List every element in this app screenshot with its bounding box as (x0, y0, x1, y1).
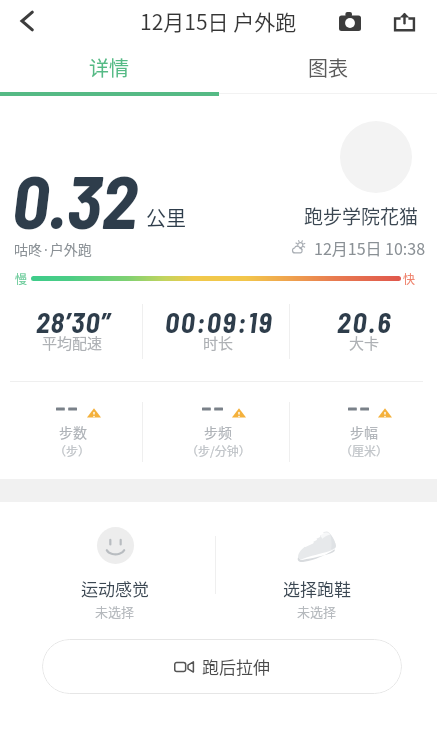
button[interactable]: 图表 (218, 42, 437, 92)
staticText: 咕咚·户外跑 (14, 239, 92, 259)
button[interactable]: 跑后拉伸 (42, 639, 402, 694)
staticText: （厘米） (340, 442, 389, 459)
staticText: 选择跑鞋 (283, 576, 351, 601)
staticText: 00:09:19 (165, 305, 274, 339)
staticText: 12月15日 10:38 (314, 236, 426, 259)
button[interactable]: 步数 (0, 402, 145, 462)
button[interactable]: 步幅 (291, 402, 437, 462)
staticText: 步数 (59, 422, 87, 442)
staticText: 快 (403, 270, 416, 287)
staticText: 20.6 (337, 305, 393, 339)
button[interactable]: 28’30” (0, 304, 145, 359)
staticText: 时长 (203, 332, 234, 354)
staticText: 0.32 (12, 155, 138, 244)
button[interactable]: Camera (330, 1, 370, 41)
button[interactable]: Back (5, 0, 49, 41)
staticText: 跑步学院花猫 (304, 202, 419, 230)
button[interactable]: User avatar (340, 121, 412, 193)
staticText: 运动感觉 (81, 576, 149, 601)
button[interactable]: Share (384, 1, 424, 41)
staticText: 平均配速 (42, 332, 103, 354)
staticText: 步频 (204, 422, 232, 442)
button[interactable]: 步频 (145, 402, 291, 462)
staticText: 跑后拉伸 (202, 654, 270, 679)
button[interactable]: 00:09:19 (145, 304, 291, 359)
button[interactable]: 运动感觉 (14, 515, 216, 625)
staticText: 慢 (15, 270, 28, 287)
button[interactable]: 详情 (0, 42, 218, 92)
button[interactable]: 选择跑鞋 (216, 515, 418, 625)
staticText: 大卡 (349, 332, 380, 354)
staticText: 12月15日 户外跑 (140, 6, 297, 36)
button[interactable]: 20.6 (291, 304, 437, 359)
staticText: 28’30” (36, 305, 112, 339)
staticText: 步幅 (350, 422, 378, 442)
staticText: （步） (54, 442, 91, 459)
staticText: 图表 (308, 53, 348, 82)
staticText: 未选择 (95, 602, 135, 621)
staticText: 公里 (146, 203, 186, 232)
staticText: 未选择 (297, 602, 337, 621)
staticText: （步/分钟） (186, 442, 251, 459)
staticText: 详情 (89, 53, 129, 82)
